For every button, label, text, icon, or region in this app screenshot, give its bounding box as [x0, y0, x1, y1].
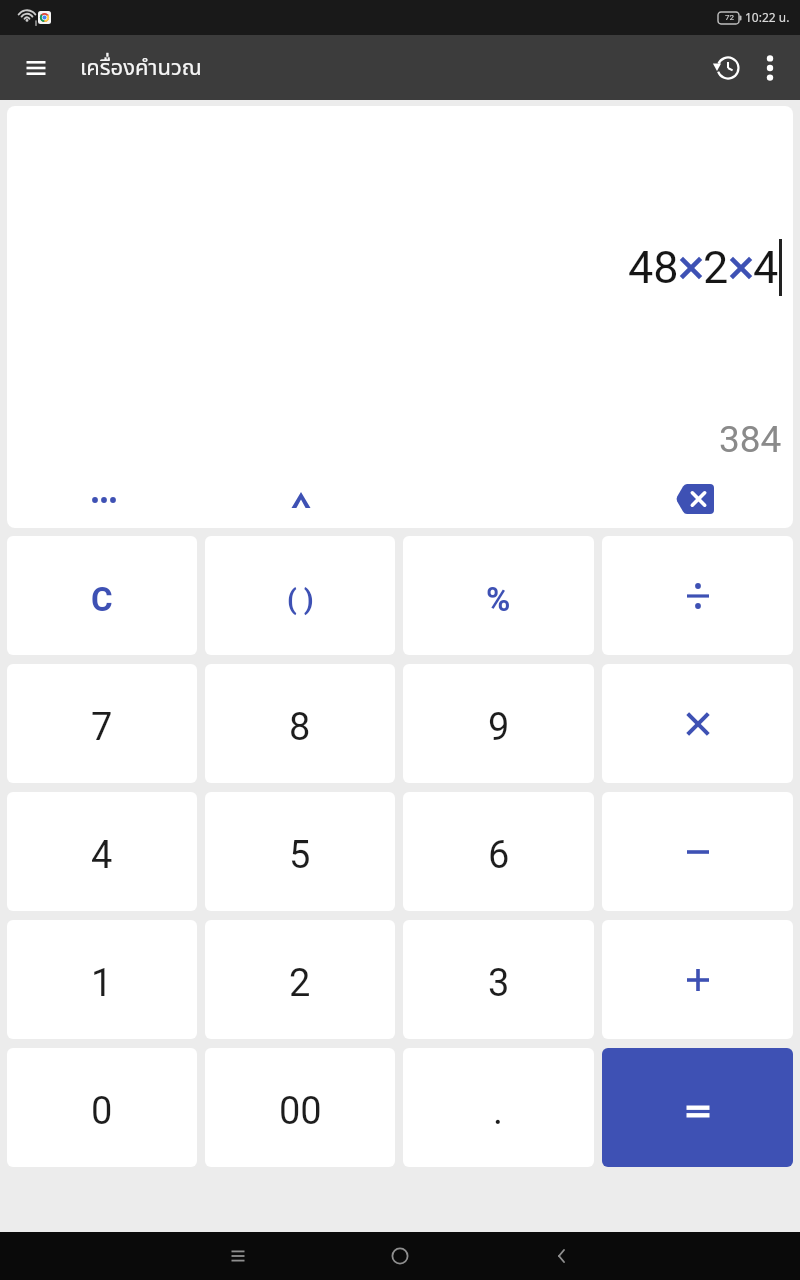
button[interactable]: 2 [205, 920, 395, 1039]
staticText: % [486, 580, 511, 619]
button[interactable] [602, 1048, 793, 1167]
button[interactable]: . [403, 1048, 594, 1167]
button[interactable]: 7 [7, 664, 197, 783]
staticText: 7 [91, 705, 113, 750]
button[interactable]: 1 [7, 920, 197, 1039]
button[interactable]: 5 [205, 792, 395, 911]
staticText: 6 [488, 833, 510, 878]
staticText: 5 [289, 833, 311, 878]
button[interactable] [703, 44, 751, 92]
staticText: 1 [91, 961, 113, 1006]
button[interactable]: 6 [403, 792, 594, 911]
staticText: 00 [279, 1089, 322, 1134]
button[interactable] [12, 44, 60, 92]
button[interactable] [602, 664, 793, 783]
staticText: 384 [719, 418, 782, 461]
button[interactable]: C [7, 536, 197, 655]
staticText: 2 [703, 241, 729, 294]
staticText: 48 [628, 241, 679, 294]
staticText: . [493, 1089, 504, 1134]
button[interactable] [602, 536, 793, 655]
staticText: 0 [91, 1089, 113, 1134]
button[interactable] [602, 792, 793, 911]
staticText: 3 [488, 961, 510, 1006]
staticText: ( ) [287, 583, 314, 616]
button[interactable]: % [403, 536, 594, 655]
button[interactable] [602, 920, 793, 1039]
button[interactable]: 0 [7, 1048, 197, 1167]
button[interactable]: ( ) [205, 536, 395, 655]
staticText: 8 [289, 705, 311, 750]
staticText: 2 [289, 961, 311, 1006]
button[interactable]: 3 [403, 920, 594, 1039]
staticText: เครื่องคำนวณ [80, 52, 202, 85]
staticText: 10:22 น. [745, 9, 790, 27]
button[interactable] [214, 1232, 262, 1280]
staticText: C [91, 580, 113, 619]
staticText: 72 [725, 13, 734, 22]
staticText: 9 [488, 705, 510, 750]
button[interactable]: 8 [205, 664, 395, 783]
button[interactable]: 9 [403, 664, 594, 783]
button[interactable] [667, 473, 723, 525]
staticText: 4 [91, 833, 113, 878]
button[interactable] [80, 476, 128, 524]
staticText: 4 [753, 241, 779, 294]
button[interactable] [538, 1232, 586, 1280]
button[interactable] [277, 476, 325, 524]
button[interactable] [746, 44, 794, 92]
button[interactable]: 4 [7, 792, 197, 911]
button[interactable]: 00 [205, 1048, 395, 1167]
button[interactable] [376, 1232, 424, 1280]
